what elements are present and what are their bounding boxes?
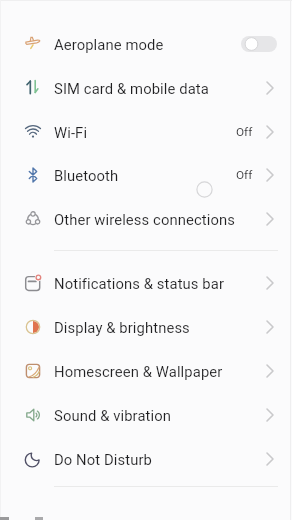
button[interactable]: Display & brightness: [0, 305, 292, 349]
staticText: Other wireless connections: [54, 211, 235, 228]
staticText: Display & brightness: [54, 319, 190, 336]
staticText: Notifications & status bar: [54, 275, 225, 292]
staticText: Wi-Fi: [54, 124, 88, 141]
button[interactable]: Homescreen & Wallpaper: [0, 349, 292, 393]
staticText: Homescreen & Wallpaper: [54, 363, 223, 380]
staticText: Off: [236, 125, 253, 139]
button[interactable]: Do Not Disturb: [0, 437, 292, 481]
staticText: Sound & vibration: [54, 407, 172, 424]
button[interactable]: SIM card & mobile data: [0, 66, 292, 110]
button[interactable]: Notifications & status bar: [0, 261, 292, 305]
staticText: Bluetooth: [54, 167, 119, 184]
staticText: Off: [236, 168, 253, 182]
button[interactable]: Aeroplane mode: [0, 22, 292, 66]
staticText: SIM card & mobile data: [54, 80, 209, 97]
staticText: Do Not Disturb: [54, 451, 152, 468]
button[interactable]: Other wireless connections: [0, 197, 292, 241]
staticText: Aeroplane mode: [54, 36, 164, 53]
button[interactable]: Wi-Fi: [0, 110, 292, 154]
button[interactable]: Sound & vibration: [0, 393, 292, 437]
button[interactable]: Bluetooth: [0, 153, 292, 197]
